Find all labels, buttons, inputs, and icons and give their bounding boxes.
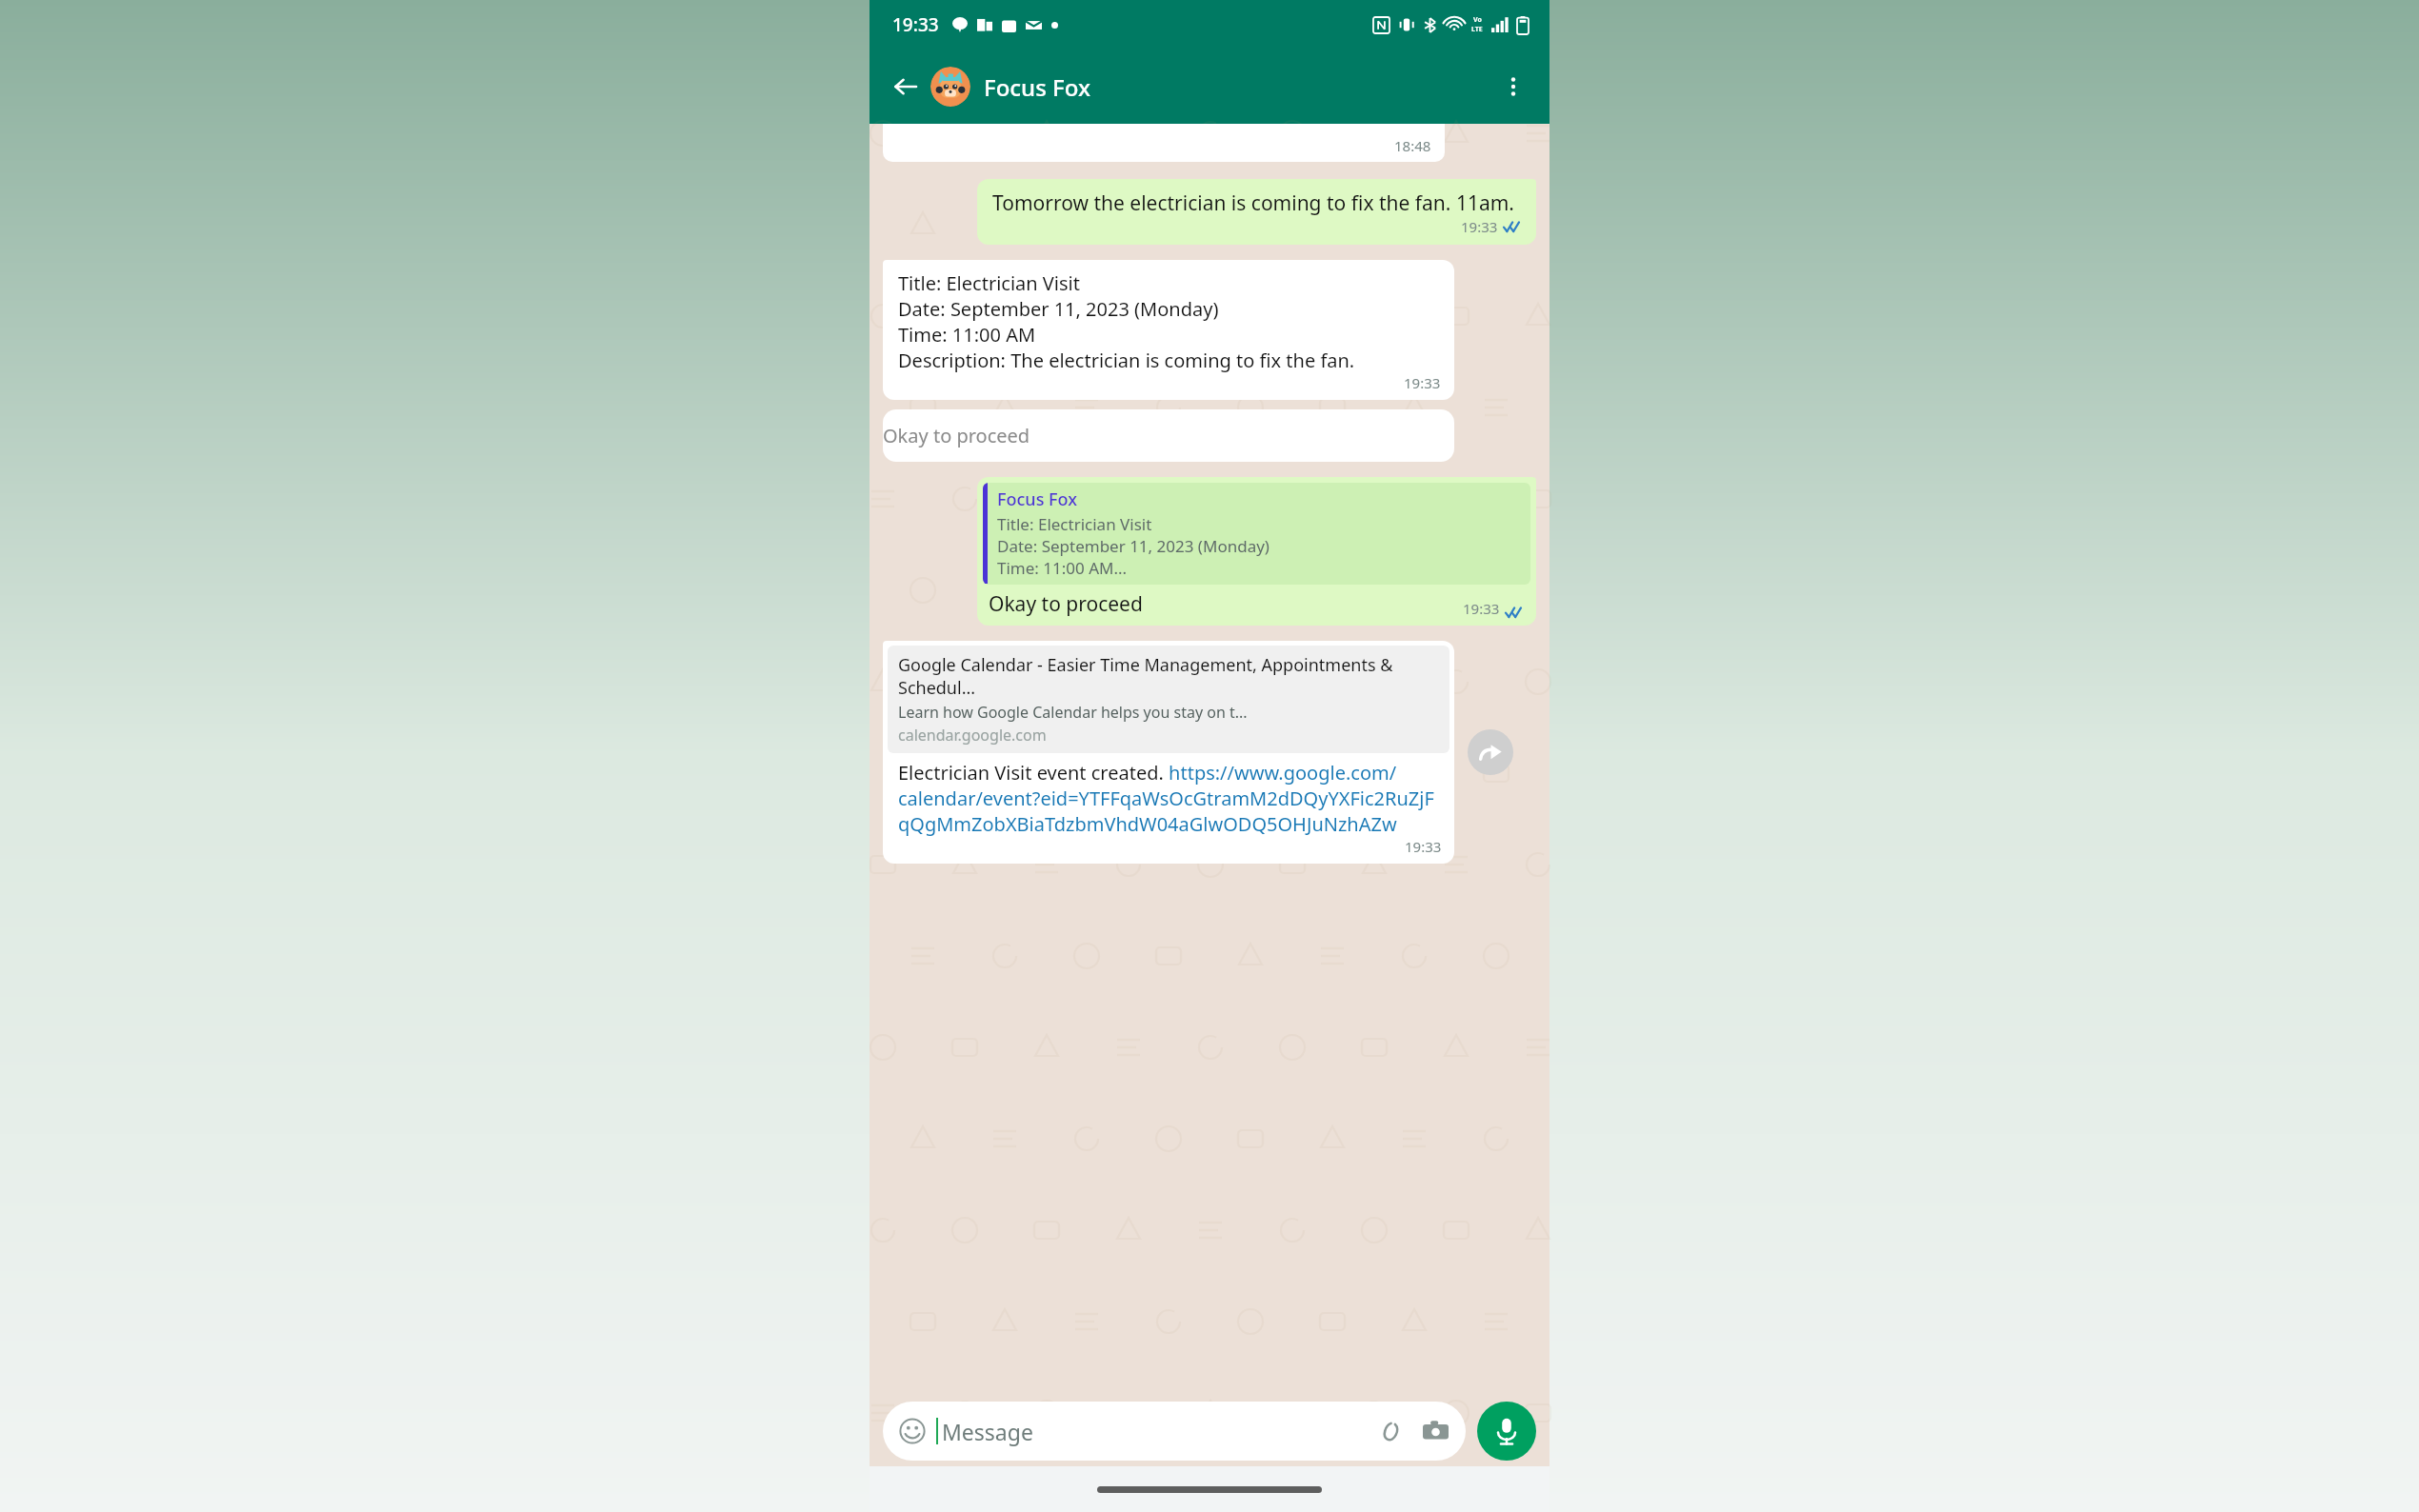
button[interactable]: More options [1492, 66, 1534, 108]
button[interactable]: Back [885, 66, 927, 108]
staticText: Okay to proceed [883, 423, 1454, 448]
staticText: Focus Fox [997, 487, 1077, 511]
staticText: Electrician Visit event created. https:/… [898, 760, 1442, 837]
button[interactable]: Camera [1418, 1414, 1452, 1448]
staticText: Message [942, 1417, 1033, 1446]
staticText: Learn how Google Calendar helps you stay… [898, 702, 1248, 723]
button[interactable]: Title: Electrician Visit Date: September… [883, 260, 1454, 400]
staticText: Vo [1473, 15, 1482, 25]
button[interactable]: Attach [1372, 1414, 1407, 1448]
button[interactable]: Emoji [896, 1415, 929, 1447]
button[interactable]: Forward [1468, 729, 1513, 775]
staticText: Focus Fox [984, 71, 1090, 103]
staticText: Title: Electrician Visit Date: September… [898, 270, 1355, 373]
staticText: LTE [1471, 25, 1483, 34]
staticText: 19:33 [1461, 217, 1498, 236]
staticText: 19:33 [1405, 837, 1442, 856]
staticText: 19:33 [1463, 599, 1500, 618]
button[interactable]: Tomorrow the electrician is coming to fi… [977, 179, 1536, 245]
staticText: Google Calendar - Easier Time Management… [898, 653, 1439, 699]
staticText: Title: Electrician Visit Date: September… [997, 513, 1269, 579]
staticText: Okay to proceed [989, 590, 1143, 618]
button[interactable]: Emoji [883, 1402, 1466, 1461]
button[interactable]: 18:48 [883, 124, 1445, 162]
staticText: calendar.google.com [898, 725, 1047, 746]
button[interactable]: Focus Fox [977, 477, 1536, 626]
button[interactable]: Voice message [1477, 1402, 1536, 1461]
button[interactable]: Google Calendar - Easier Time Management… [888, 646, 1449, 753]
staticText: 19:33 [892, 12, 939, 37]
staticText: Tomorrow the electrician is coming to fi… [992, 189, 1514, 217]
button[interactable]: Google Calendar - Easier Time Management… [883, 641, 1454, 864]
button[interactable]: Focus Fox [984, 71, 1492, 103]
staticText: 18:48 [1394, 136, 1431, 155]
button[interactable]: Okay to proceed [883, 409, 1454, 462]
staticText: 19:33 [1404, 373, 1441, 392]
